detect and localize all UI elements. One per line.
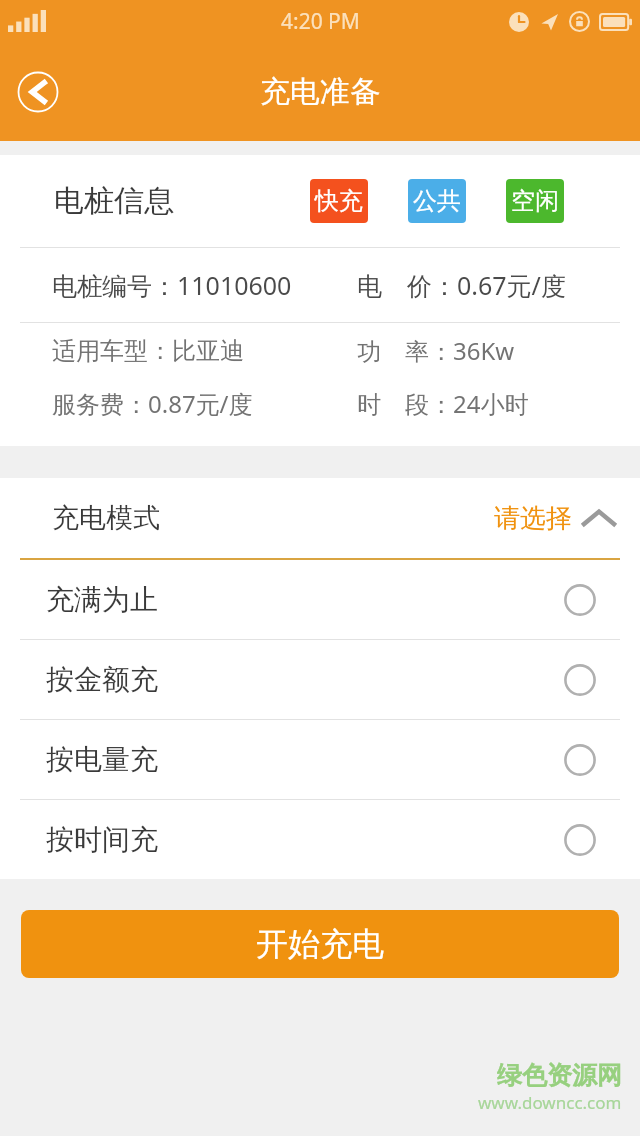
button[interactable]: Back — [17, 71, 59, 113]
staticText: 开始充电 — [256, 924, 384, 964]
button[interactable]: 充满为止 — [0, 560, 640, 640]
button[interactable]: 按金额充 — [0, 640, 640, 720]
staticText: 4:20 PM — [281, 7, 360, 36]
button[interactable]: 空闲 — [506, 179, 564, 223]
staticText: www.downcc.com — [478, 1091, 622, 1114]
staticText: 空闲 — [511, 186, 559, 216]
button[interactable]: 按时间充 — [0, 800, 640, 879]
staticText: 请选择 — [494, 502, 572, 535]
staticText: 电桩信息 — [54, 182, 174, 220]
staticText: 服务费：0.87元/度 — [52, 387, 253, 420]
button[interactable]: 充电模式 — [0, 478, 640, 558]
staticText: 电桩编号：11010600 — [52, 268, 292, 302]
staticText: 绿色资源网 — [497, 1060, 622, 1091]
staticText: 适用车型：比亚迪 — [52, 336, 244, 366]
staticText: 公共 — [413, 186, 461, 216]
button[interactable]: 按电量充 — [0, 720, 640, 800]
staticText: 时 段：24小时 — [357, 387, 529, 420]
button[interactable]: 开始充电 — [21, 910, 619, 978]
staticText: 功 率：36Kw — [357, 334, 515, 367]
staticText: 快充 — [315, 186, 363, 216]
button[interactable]: 快充 — [310, 179, 368, 223]
staticText: 充满为止 — [46, 582, 158, 617]
button[interactable]: 公共 — [408, 179, 466, 223]
staticText: 充电准备 — [260, 73, 380, 111]
staticText: 按金额充 — [46, 662, 158, 697]
staticText: 按电量充 — [46, 742, 158, 777]
staticText: 按时间充 — [46, 822, 158, 857]
staticText: 充电模式 — [52, 501, 160, 535]
staticText: 电 价：0.67元/度 — [357, 268, 566, 302]
